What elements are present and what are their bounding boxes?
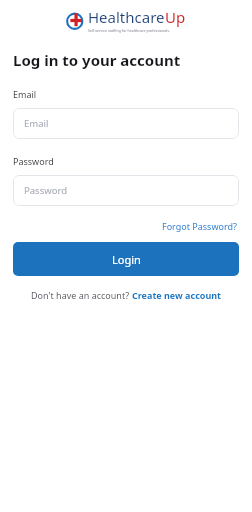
staticText: Up <box>165 7 186 27</box>
button[interactable]: Email <box>13 108 239 139</box>
other: HealthcareUp logo <box>66 11 85 30</box>
staticText: Self-service staffing for healthcare pro… <box>88 28 170 33</box>
staticText: Email <box>13 88 37 100</box>
staticText: Email <box>24 117 49 130</box>
staticText: Don't have an account? <box>31 289 132 301</box>
staticText: Password <box>24 184 67 197</box>
staticText: Login <box>112 252 141 267</box>
staticText: Create new account <box>132 289 222 301</box>
button[interactable]: Create new account <box>132 289 222 301</box>
staticText: Forgot Password? <box>162 220 237 232</box>
staticText: Log in to your account <box>13 50 181 70</box>
staticText: Password <box>13 155 54 167</box>
staticText: Healthcare <box>88 7 165 27</box>
button[interactable]: Forgot Password? <box>160 218 239 234</box>
button[interactable]: Login <box>13 242 239 276</box>
button[interactable]: Password <box>13 175 239 206</box>
